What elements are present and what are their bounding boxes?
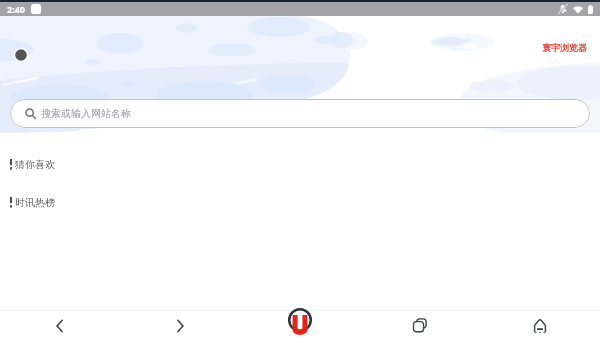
staticText: 时讯热榜	[15, 196, 55, 209]
staticText: 猜你喜欢	[15, 158, 55, 171]
button[interactable]: Tabs	[360, 310, 480, 338]
button[interactable]: Forward	[120, 310, 240, 338]
button[interactable]: 寰宇浏览器 主页	[283, 303, 317, 331]
button[interactable]: Home	[480, 310, 600, 338]
staticText: 2:40	[7, 3, 25, 15]
button[interactable]: 搜索或输入网站名称	[10, 99, 590, 128]
button[interactable]: Back	[0, 310, 120, 338]
button[interactable]: 时讯热榜	[10, 196, 600, 209]
staticText: 寰宇浏览器	[542, 42, 587, 53]
button[interactable]: 猜你喜欢	[10, 158, 600, 171]
staticText: 搜索或输入网站名称	[41, 107, 131, 120]
